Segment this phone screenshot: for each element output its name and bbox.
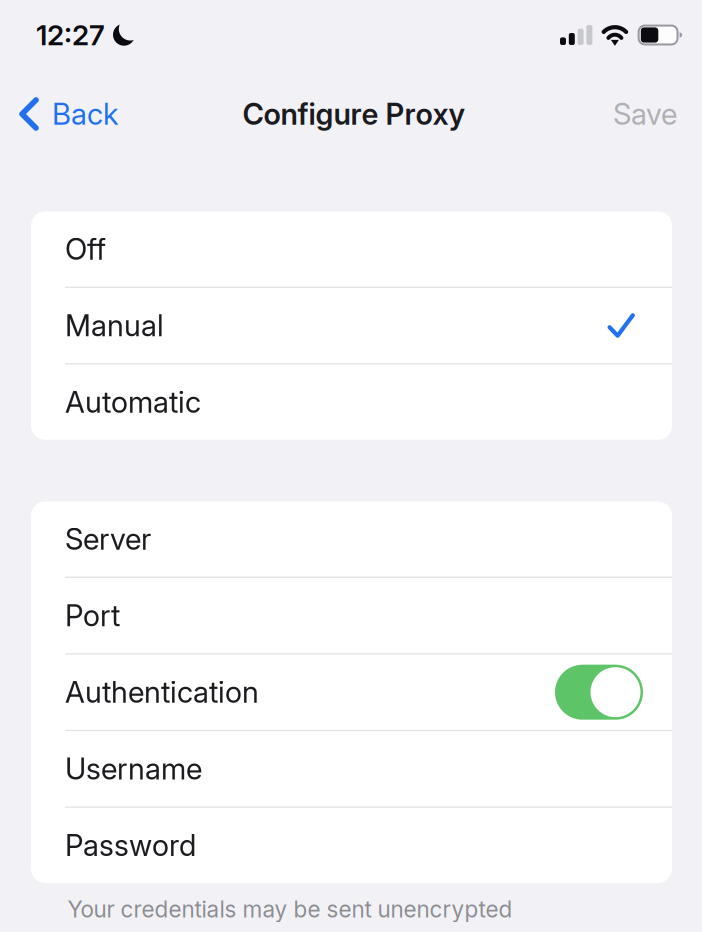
staticText: Server xyxy=(65,521,151,557)
staticText: Automatic xyxy=(65,384,201,420)
button[interactable]: Off xyxy=(31,211,672,287)
staticText: Save xyxy=(613,96,677,132)
staticText: Back xyxy=(52,96,119,132)
button[interactable]: Authentication xyxy=(31,655,672,730)
button[interactable]: Save xyxy=(599,70,702,158)
staticText: Off xyxy=(65,231,106,267)
staticText: Password xyxy=(65,828,196,863)
staticText: 12:27 xyxy=(36,18,105,52)
button[interactable]: Server xyxy=(31,501,672,577)
button[interactable]: Automatic xyxy=(31,365,672,440)
button[interactable]: Back xyxy=(0,70,133,158)
button[interactable]: Port xyxy=(31,578,672,653)
button[interactable]: Manual xyxy=(31,288,672,363)
staticText: Configure Proxy xyxy=(242,96,465,132)
button[interactable]: Password xyxy=(31,808,672,883)
staticText: Port xyxy=(65,598,120,633)
staticText: Authentication xyxy=(65,674,259,710)
staticText: Manual xyxy=(65,308,164,343)
staticText: Username xyxy=(65,751,202,787)
button[interactable]: Username xyxy=(31,731,672,806)
staticText: Your credentials may be sent unencrypted xyxy=(67,895,512,923)
